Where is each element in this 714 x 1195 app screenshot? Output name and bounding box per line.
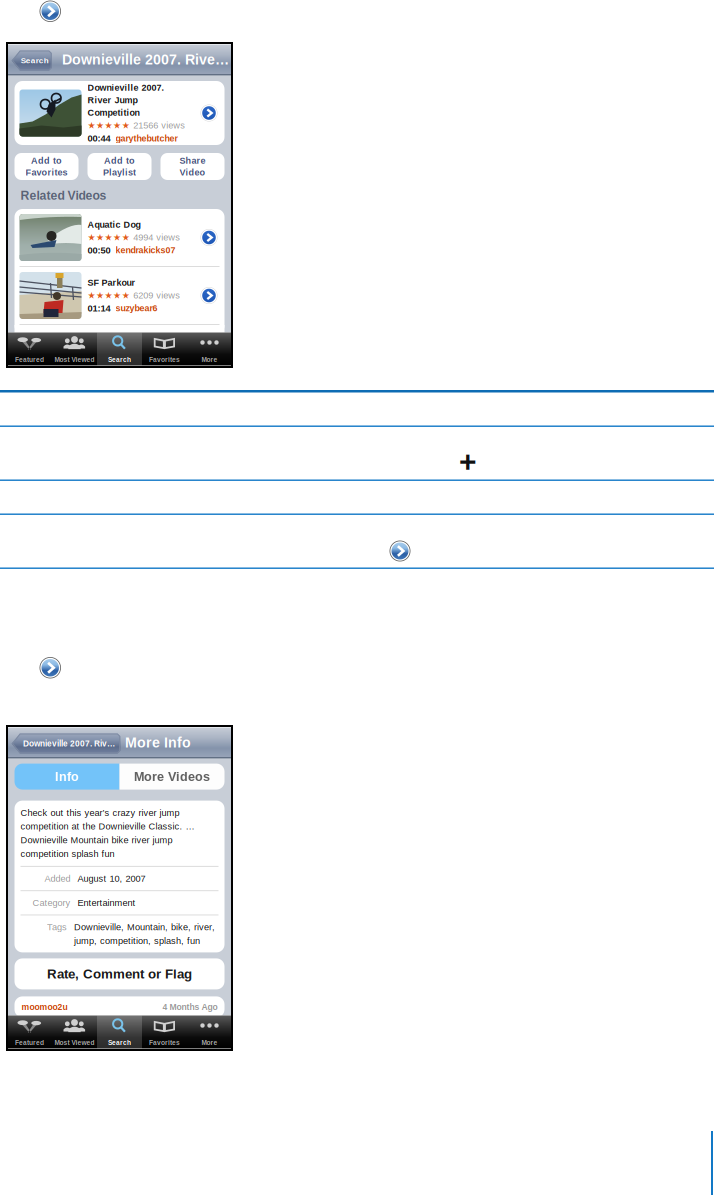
staticText: 00:44: [87, 133, 110, 143]
button[interactable]: Favorites: [142, 1015, 187, 1048]
staticText: Search: [21, 56, 49, 65]
staticText: Video: [179, 167, 205, 177]
staticText: Aquatic Dog: [87, 219, 140, 230]
staticText: ★: [105, 120, 113, 131]
staticText: Search: [108, 1039, 131, 1046]
staticText: moomoo2u: [21, 1002, 67, 1012]
button[interactable]: Add to: [87, 153, 151, 180]
staticText: Downieville Mountain bike river jump: [20, 835, 172, 845]
staticText: More: [201, 356, 217, 363]
button[interactable]: Most Viewed: [52, 332, 97, 365]
staticText: Favorites: [149, 1039, 180, 1046]
staticText: Downieville 2007. Rive…: [62, 52, 229, 67]
staticText: ★: [105, 232, 113, 243]
staticText: SF Parkour: [87, 277, 135, 288]
staticText: 6209 views: [133, 290, 180, 300]
staticText: ★: [122, 290, 130, 301]
staticText: ★: [87, 290, 95, 301]
staticText: Entertainment: [77, 898, 135, 908]
staticText: Playlist: [103, 167, 136, 177]
staticText: competition at the Downieville Classic. …: [20, 821, 194, 832]
button[interactable]: Downieville 2007. Riv…: [11, 733, 120, 754]
button[interactable]: More: [187, 1015, 232, 1048]
staticText: Most Viewed: [54, 1039, 94, 1046]
staticText: 4 Months Ago: [162, 1002, 217, 1012]
button[interactable]: Search: [11, 50, 52, 71]
button[interactable]: Most Viewed: [52, 1015, 97, 1048]
staticText: Added: [44, 873, 70, 884]
staticText: Add to: [104, 156, 135, 166]
staticText: Most Viewed: [54, 356, 94, 363]
staticText: Featured: [15, 1039, 44, 1046]
staticText: ★: [113, 120, 121, 131]
button[interactable]: Featured: [7, 332, 52, 365]
button[interactable]: Featured: [7, 1015, 52, 1048]
staticText: Downieville, Mountain, bike, river,: [74, 922, 215, 932]
button[interactable]: SF Parkour: [14, 267, 224, 324]
button[interactable]: Share: [160, 153, 224, 180]
staticText: ★: [96, 232, 104, 243]
staticText: suzybear6: [115, 303, 157, 313]
button[interactable]: Search: [97, 1015, 142, 1048]
staticText: ★: [113, 232, 121, 243]
staticText: Competition: [87, 108, 139, 118]
staticText: Check out this year’s crazy river jump: [20, 808, 179, 818]
staticText: Tags: [47, 922, 67, 932]
staticText: ★: [96, 290, 104, 301]
staticText: Category: [32, 898, 70, 908]
button[interactable]: Rate, Comment or Flag: [14, 958, 224, 989]
staticText: Rate, Comment or Flag: [47, 966, 192, 981]
staticText: jump, competition, splash, fun: [74, 936, 200, 946]
staticText: 4994 views: [133, 232, 180, 242]
staticText: ★: [113, 290, 121, 301]
staticText: More: [201, 1039, 217, 1046]
staticText: More Videos: [134, 769, 210, 784]
staticText: Search: [108, 356, 131, 363]
button[interactable]: Search: [97, 332, 142, 365]
button[interactable]: Add to: [14, 153, 78, 180]
staticText: 21566 views: [133, 120, 185, 130]
button[interactable]: More: [187, 332, 232, 365]
staticText: Add to: [31, 156, 62, 166]
button[interactable]: Info: [14, 764, 119, 790]
staticText: ★: [122, 120, 130, 131]
staticText: ★: [105, 290, 113, 301]
staticText: Featured: [15, 356, 44, 363]
button[interactable]: Downieville 2007.: [14, 81, 224, 145]
button[interactable]: Aquatic Dog: [14, 209, 224, 266]
button[interactable]: Favorites: [142, 332, 187, 365]
staticText: 00:50: [87, 245, 110, 255]
staticText: River Jump: [87, 95, 137, 105]
staticText: +: [459, 444, 477, 478]
staticText: Downieville 2007.: [87, 82, 164, 93]
staticText: More Info: [125, 735, 191, 750]
staticText: competition splash fun: [20, 849, 114, 859]
staticText: ★: [122, 232, 130, 243]
staticText: kendrakicks07: [115, 245, 175, 255]
staticText: garythebutcher: [115, 133, 177, 143]
staticText: ★: [87, 232, 95, 243]
button[interactable]: More Videos: [119, 764, 224, 790]
staticText: 01:14: [87, 303, 110, 313]
staticText: Share: [179, 156, 205, 166]
staticText: Related Videos: [20, 189, 106, 202]
staticText: ★: [96, 120, 104, 131]
staticText: Favorites: [25, 167, 67, 177]
staticText: Downieville 2007. Riv…: [23, 739, 115, 748]
staticText: Info: [55, 769, 79, 784]
staticText: August 10, 2007: [77, 873, 145, 884]
staticText: ★: [87, 120, 95, 131]
staticText: Favorites: [149, 356, 180, 363]
